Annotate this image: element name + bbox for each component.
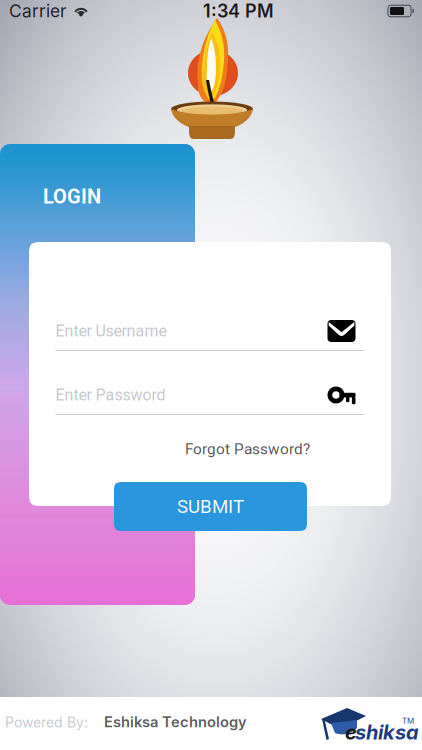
staticText: shiksa: [355, 720, 419, 744]
staticText: Enter Password: [55, 386, 165, 404]
staticText: LOGIN: [43, 185, 101, 208]
button[interactable]: SUBMIT: [114, 482, 307, 531]
staticText: Powered By:: [5, 714, 88, 731]
staticText: 1:34 PM: [203, 0, 274, 22]
staticText: Enter Username: [55, 322, 166, 340]
staticText: Carrier: [9, 0, 67, 21]
staticText: Eshiksa Technology: [104, 713, 247, 731]
staticText: SUBMIT: [177, 496, 244, 517]
button[interactable]: Forgot Password?: [185, 440, 310, 458]
staticText: Forgot Password?: [185, 440, 310, 458]
staticText: e: [345, 720, 357, 744]
staticText: TM: [402, 716, 414, 726]
